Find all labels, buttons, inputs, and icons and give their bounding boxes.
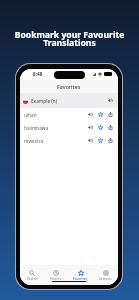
button[interactable]: Settings — [93, 265, 118, 280]
button[interactable]: Share — [108, 125, 113, 130]
staticText: Search — [27, 276, 38, 280]
staticText: Favorites — [57, 83, 81, 90]
button[interactable]: Favorites — [68, 265, 93, 280]
button[interactable]: History — [44, 265, 68, 280]
button[interactable]: Share — [108, 138, 113, 143]
button[interactable]: Share — [108, 112, 113, 117]
staticText: Bookmark your Favourite Translations — [0, 29, 139, 49]
button[interactable]: mwestra — [20, 134, 118, 147]
button[interactable]: Favorite — [98, 125, 103, 130]
staticText: ulhan — [24, 112, 37, 118]
staticText: halimbawa — [24, 125, 49, 131]
button[interactable]: Play audio — [88, 112, 93, 117]
button[interactable]: halimbawa — [20, 121, 118, 134]
button[interactable]: Search — [20, 265, 44, 280]
staticText: Example (n) — [31, 98, 58, 104]
button[interactable]: Favorite — [98, 138, 103, 143]
button[interactable]: Play audio — [108, 98, 113, 103]
staticText: 8:48 — [33, 71, 43, 77]
button[interactable]: Play audio — [88, 138, 93, 143]
button[interactable]: Example (n) — [20, 93, 118, 108]
staticText: History — [50, 276, 62, 280]
staticText: mwestra — [24, 138, 44, 144]
button[interactable]: ulhan — [20, 108, 118, 121]
staticText: Settings — [99, 276, 112, 280]
staticText: Favorites — [73, 276, 88, 280]
button[interactable]: Play audio — [88, 125, 93, 130]
button[interactable]: Favorite — [98, 112, 103, 117]
